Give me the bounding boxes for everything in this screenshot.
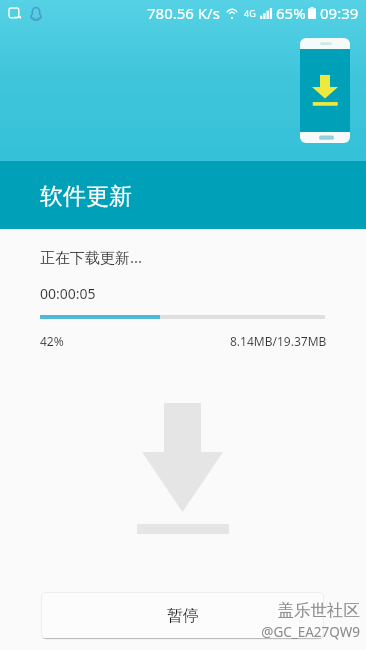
staticText: 09:39 (320, 3, 359, 23)
staticText: @GC_EA27QW9 (261, 623, 360, 641)
staticText: 780.56 K/s (147, 3, 220, 23)
staticText: 65% (276, 3, 306, 23)
staticText: 软件更新 (40, 182, 132, 211)
staticText: 盖乐世社区 (277, 600, 360, 621)
staticText: 00:00:05 (40, 284, 96, 303)
button[interactable]: 暂停 (42, 593, 323, 638)
staticText: 8.14MB/19.37MB (230, 333, 327, 349)
other: Screenshot (9, 8, 21, 20)
other: QQ (30, 7, 42, 20)
staticText: 正在下载更新... (40, 247, 143, 267)
staticText: 42% (40, 333, 64, 349)
staticText: 暂停 (167, 606, 199, 626)
staticText: 4G (244, 7, 256, 19)
